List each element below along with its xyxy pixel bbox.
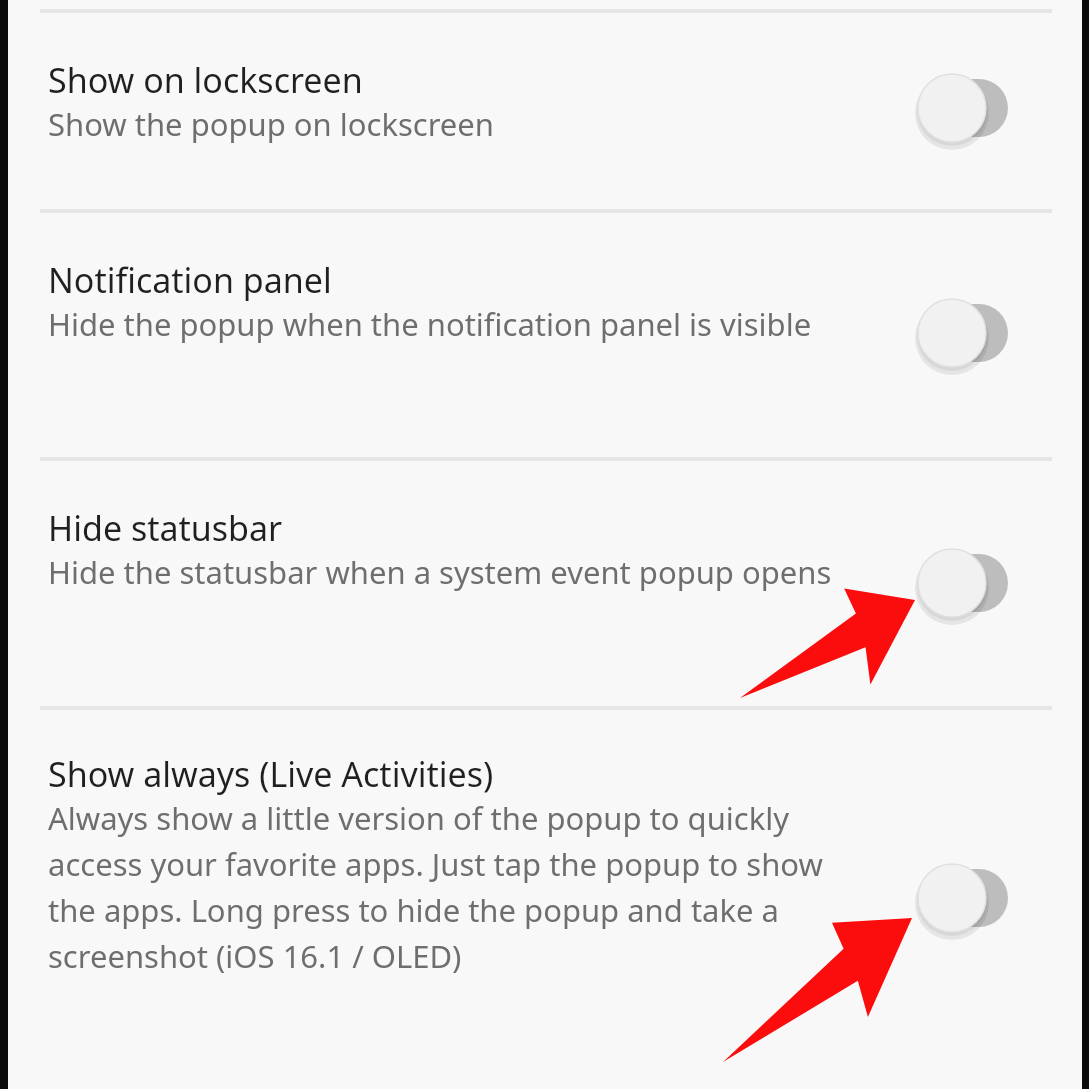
- staticText: Hide the statusbar when a system event p…: [48, 551, 832, 593]
- button[interactable]: Show always (Live Activities): [0, 751, 1089, 1089]
- staticText: Show always (Live Activities): [48, 751, 494, 797]
- staticText: Always show a little version of the popu…: [48, 797, 874, 977]
- staticText: Show on lockscreen: [48, 57, 363, 103]
- staticText: Hide the popup when the notification pan…: [48, 303, 812, 345]
- button[interactable]: Show on lockscreen: [0, 57, 1089, 209]
- staticText: Hide statusbar: [48, 505, 283, 551]
- staticText: Show the popup on lockscreen: [48, 103, 494, 145]
- button[interactable]: Notification panel: [0, 257, 1089, 457]
- button[interactable]: Hide statusbar: [0, 505, 1089, 705]
- staticText: Notification panel: [48, 257, 332, 303]
